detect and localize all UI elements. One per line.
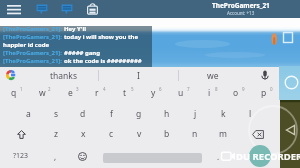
button[interactable]: x [69,124,97,144]
button[interactable]: m [209,124,237,144]
staticText: d [80,108,86,120]
staticText: ok the code is ######### [64,57,142,65]
button[interactable]: q [0,83,28,103]
staticText: 8 [215,86,218,92]
button[interactable]: v [125,124,153,144]
staticText: 5 [131,86,134,92]
button[interactable]: Shift [8,124,35,144]
button[interactable]: p [250,83,278,103]
button[interactable]: u [167,83,195,103]
staticText: today i will show you the [64,33,139,41]
button[interactable]: c [97,124,125,144]
button[interactable]: I [136,67,141,84]
staticText: a [26,108,31,120]
staticText: m [219,128,227,140]
button[interactable]: Menu [4,2,23,16]
button[interactable]: d [69,104,97,124]
staticText: 4 [103,86,106,92]
staticText: 0 [270,86,273,92]
staticText: 2 [48,86,51,92]
staticText: [TheProGamers_21]: [3,33,64,41]
button[interactable]: . [209,146,227,166]
button[interactable]: w [28,83,56,103]
staticText: Hey Y'll [64,25,86,33]
button[interactable]: Emoji [71,146,93,166]
button[interactable]: we [206,67,219,84]
button[interactable]: t [111,83,139,103]
button[interactable]: b [153,124,181,144]
staticText: we [207,70,219,82]
staticText: [TheProGamers_21]: [3,57,64,65]
button[interactable]: j [181,104,209,124]
button[interactable]: f [97,104,125,124]
staticText: q [11,87,17,99]
button[interactable]: Voice input [256,67,273,84]
button[interactable]: s [42,104,70,124]
staticText: [TheProGamers_21]: [3,25,64,33]
staticText: n [192,128,198,140]
staticText: u [178,87,184,99]
staticText: I [137,70,140,82]
button[interactable]: g [125,104,153,124]
staticText: TheProGamers_21 [212,1,270,10]
button[interactable]: Backspace [244,124,271,144]
staticText: happier id code [3,41,50,49]
staticText: DU RECORDER [236,150,300,163]
staticText: g [136,108,142,120]
staticText: b [164,128,170,140]
staticText: t [123,87,127,99]
staticText: r [95,87,99,99]
staticText: y [151,87,156,99]
staticText: e [68,87,73,99]
button[interactable]: r [83,83,111,103]
staticText: j [194,108,197,120]
button[interactable]: h [153,104,181,124]
button[interactable]: o [222,83,250,103]
button[interactable]: Chat [34,2,50,16]
button[interactable]: , [44,146,66,166]
staticText: 7 [187,86,190,92]
button[interactable]: thanks [49,67,78,84]
staticText: 3 [76,86,79,92]
staticText: c [109,128,114,140]
staticText: Account: +13 [227,10,255,16]
staticText: , [54,151,57,162]
staticText: p [261,87,267,99]
staticText: ##### gang [64,49,101,57]
button[interactable]: n [181,124,209,144]
staticText: 1 [20,86,23,92]
staticText: s [54,108,59,120]
staticText: i [208,87,211,99]
button[interactable]: l [236,104,264,124]
staticText: l [249,108,252,120]
staticText: k [221,108,226,120]
staticText: [TheProGamers_21]: [3,49,64,57]
staticText: ?123 [13,151,29,161]
staticText: f [110,108,113,120]
staticText: thanks [50,70,77,82]
staticText: h [164,108,170,120]
button[interactable]: i [195,83,223,103]
staticText: o [233,87,239,99]
button[interactable]: Inventory [84,2,100,16]
button[interactable]: k [209,104,237,124]
staticText: x [81,128,86,140]
staticText: 9 [242,86,245,92]
button[interactable]: y [139,83,167,103]
staticText: 6 [159,86,162,92]
staticText: v [137,128,142,140]
staticText: z [54,128,58,140]
staticText: . [217,151,220,162]
button[interactable]: e [56,83,84,103]
button[interactable]: Messages [59,2,75,16]
button[interactable]: a [14,104,42,124]
button[interactable]: z [42,124,70,144]
button[interactable]: ?123 [6,146,35,166]
staticText: w [39,87,46,99]
